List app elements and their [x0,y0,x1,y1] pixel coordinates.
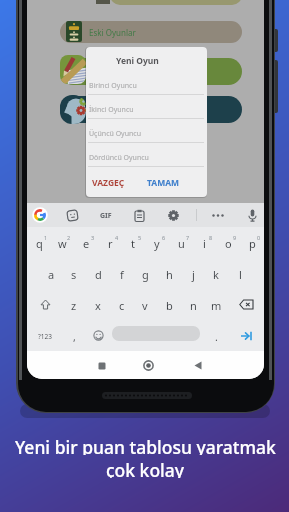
staticText: i [203,236,206,251]
staticText: f [120,267,124,282]
button[interactable] [110,258,134,289]
staticText: 2 [67,234,71,241]
button[interactable] [27,289,63,320]
button[interactable] [27,320,63,351]
staticText: c [119,298,125,313]
staticText: m [211,298,222,313]
staticText: d [95,267,102,282]
button[interactable] [51,227,75,258]
staticText: j [192,267,195,282]
staticText: a [48,267,55,282]
button[interactable] [246,208,259,223]
staticText: Yeni bir puan tablosu yaratmak [15,435,276,455]
button[interactable] [133,289,157,320]
button[interactable] [204,258,228,289]
staticText: z [71,298,77,313]
button[interactable] [193,227,217,258]
button[interactable] [66,209,79,222]
staticText: İkinci Oyuncu [89,105,134,115]
button[interactable] [157,258,181,289]
button[interactable] [185,353,210,378]
staticText: ?123 [38,332,52,341]
staticText: 7 [186,234,190,241]
staticText: VAZGEÇ [92,177,125,189]
staticText: v [142,298,148,313]
button[interactable] [39,258,63,289]
button[interactable] [110,0,242,5]
button[interactable] [228,289,264,320]
button[interactable] [27,227,51,258]
button[interactable] [228,258,252,289]
button[interactable] [181,258,205,289]
staticText: t [131,236,135,251]
staticText: Dördüncü Oyuncu [89,153,149,163]
button[interactable] [167,209,180,222]
button[interactable] [240,227,264,258]
staticText: b [166,298,173,313]
staticText: l [239,267,242,282]
button[interactable] [133,209,146,222]
button[interactable] [122,227,146,258]
staticText: r [108,236,113,251]
staticText: Yeni Oyun [116,55,159,67]
button[interactable] [74,227,98,258]
button[interactable] [86,289,110,320]
button[interactable] [98,227,122,258]
button[interactable] [145,227,169,258]
button[interactable] [228,320,264,351]
staticText: x [95,298,101,313]
button[interactable] [86,258,110,289]
button[interactable] [60,21,242,43]
button[interactable] [157,289,181,320]
staticText: w [58,236,67,251]
button[interactable] [136,353,161,378]
button[interactable] [133,258,157,289]
staticText: Eski Oyunlar [89,27,136,38]
staticText: 1 [44,234,48,241]
staticText: 5 [138,234,142,241]
staticText: n [190,298,197,313]
staticText: çok kolay [106,458,185,478]
staticText: y [154,236,160,251]
button[interactable] [110,289,134,320]
button[interactable] [211,209,225,222]
button[interactable] [216,227,240,258]
staticText: g [142,267,149,282]
staticText: k [213,267,219,282]
button[interactable] [60,96,242,123]
staticText: 4 [115,234,119,241]
button[interactable] [205,320,229,351]
button[interactable] [169,227,193,258]
button[interactable] [181,289,205,320]
button[interactable] [89,353,114,378]
button[interactable] [63,289,87,320]
staticText: 8 [209,234,213,241]
button[interactable] [63,320,87,351]
staticText: h [166,267,173,282]
button[interactable] [60,58,242,85]
staticText: o [225,236,232,251]
button[interactable]: TAMAM [103,173,207,193]
button[interactable]: VAZGEÇ [86,173,169,193]
staticText: q [36,236,43,251]
staticText: GIF [100,211,112,221]
staticText: 9 [233,234,237,241]
button[interactable] [63,258,87,289]
button[interactable]: GIF [36,206,176,226]
staticText: e [83,236,90,251]
button[interactable] [86,320,110,351]
staticText: 3 [91,234,95,241]
button[interactable] [32,207,48,223]
staticText: . [215,330,218,344]
staticText: TAMAM [147,177,180,189]
staticText: p [249,236,256,251]
staticText: 0 [257,234,261,241]
button[interactable] [204,289,228,320]
staticText: u [178,236,185,251]
staticText: s [71,267,77,282]
staticText: Üçüncü Oyuncu [89,129,142,139]
staticText: , [73,330,76,344]
button[interactable] [112,326,200,341]
staticText: 6 [162,234,166,241]
staticText: Birinci Oyuncu [89,81,137,91]
